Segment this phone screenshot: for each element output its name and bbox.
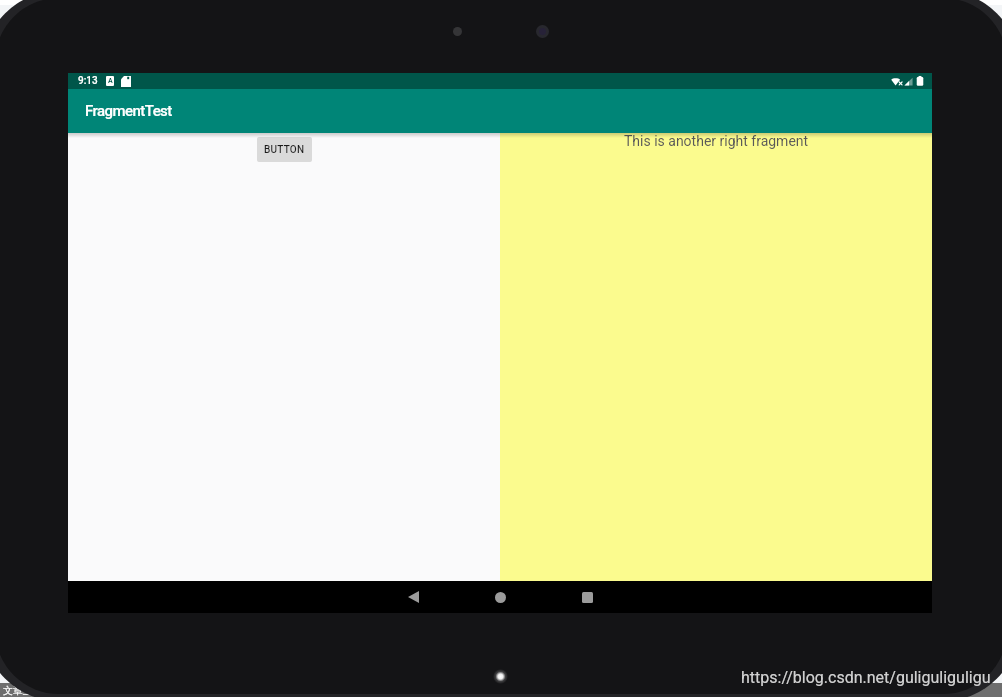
staticText: FragmentTest xyxy=(85,102,172,120)
button[interactable]: Home xyxy=(457,581,544,613)
button[interactable]: BUTTON xyxy=(257,137,312,162)
staticText: https://blog.csdn.net/guliguliguligu xyxy=(741,668,991,687)
staticText: 文章上 xyxy=(3,684,33,697)
staticText: A xyxy=(108,77,113,85)
staticText: 9:13 xyxy=(78,75,98,87)
button[interactable]: Back xyxy=(370,581,457,613)
button[interactable]: Recent apps xyxy=(544,581,631,613)
staticText: BUTTON xyxy=(264,144,305,156)
staticText: This is another right fragment xyxy=(624,133,809,149)
staticText: 344 xyxy=(930,683,951,697)
